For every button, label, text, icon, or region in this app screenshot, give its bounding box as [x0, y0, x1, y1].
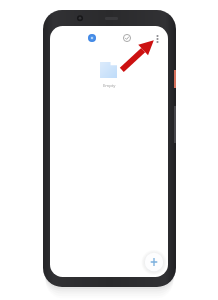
- button[interactable]: Add: [143, 251, 165, 273]
- button[interactable]: More options: [149, 31, 165, 47]
- button[interactable]: Verified: [119, 30, 135, 46]
- button[interactable]: Account: [84, 30, 100, 46]
- staticText: Empty: [103, 83, 116, 89]
